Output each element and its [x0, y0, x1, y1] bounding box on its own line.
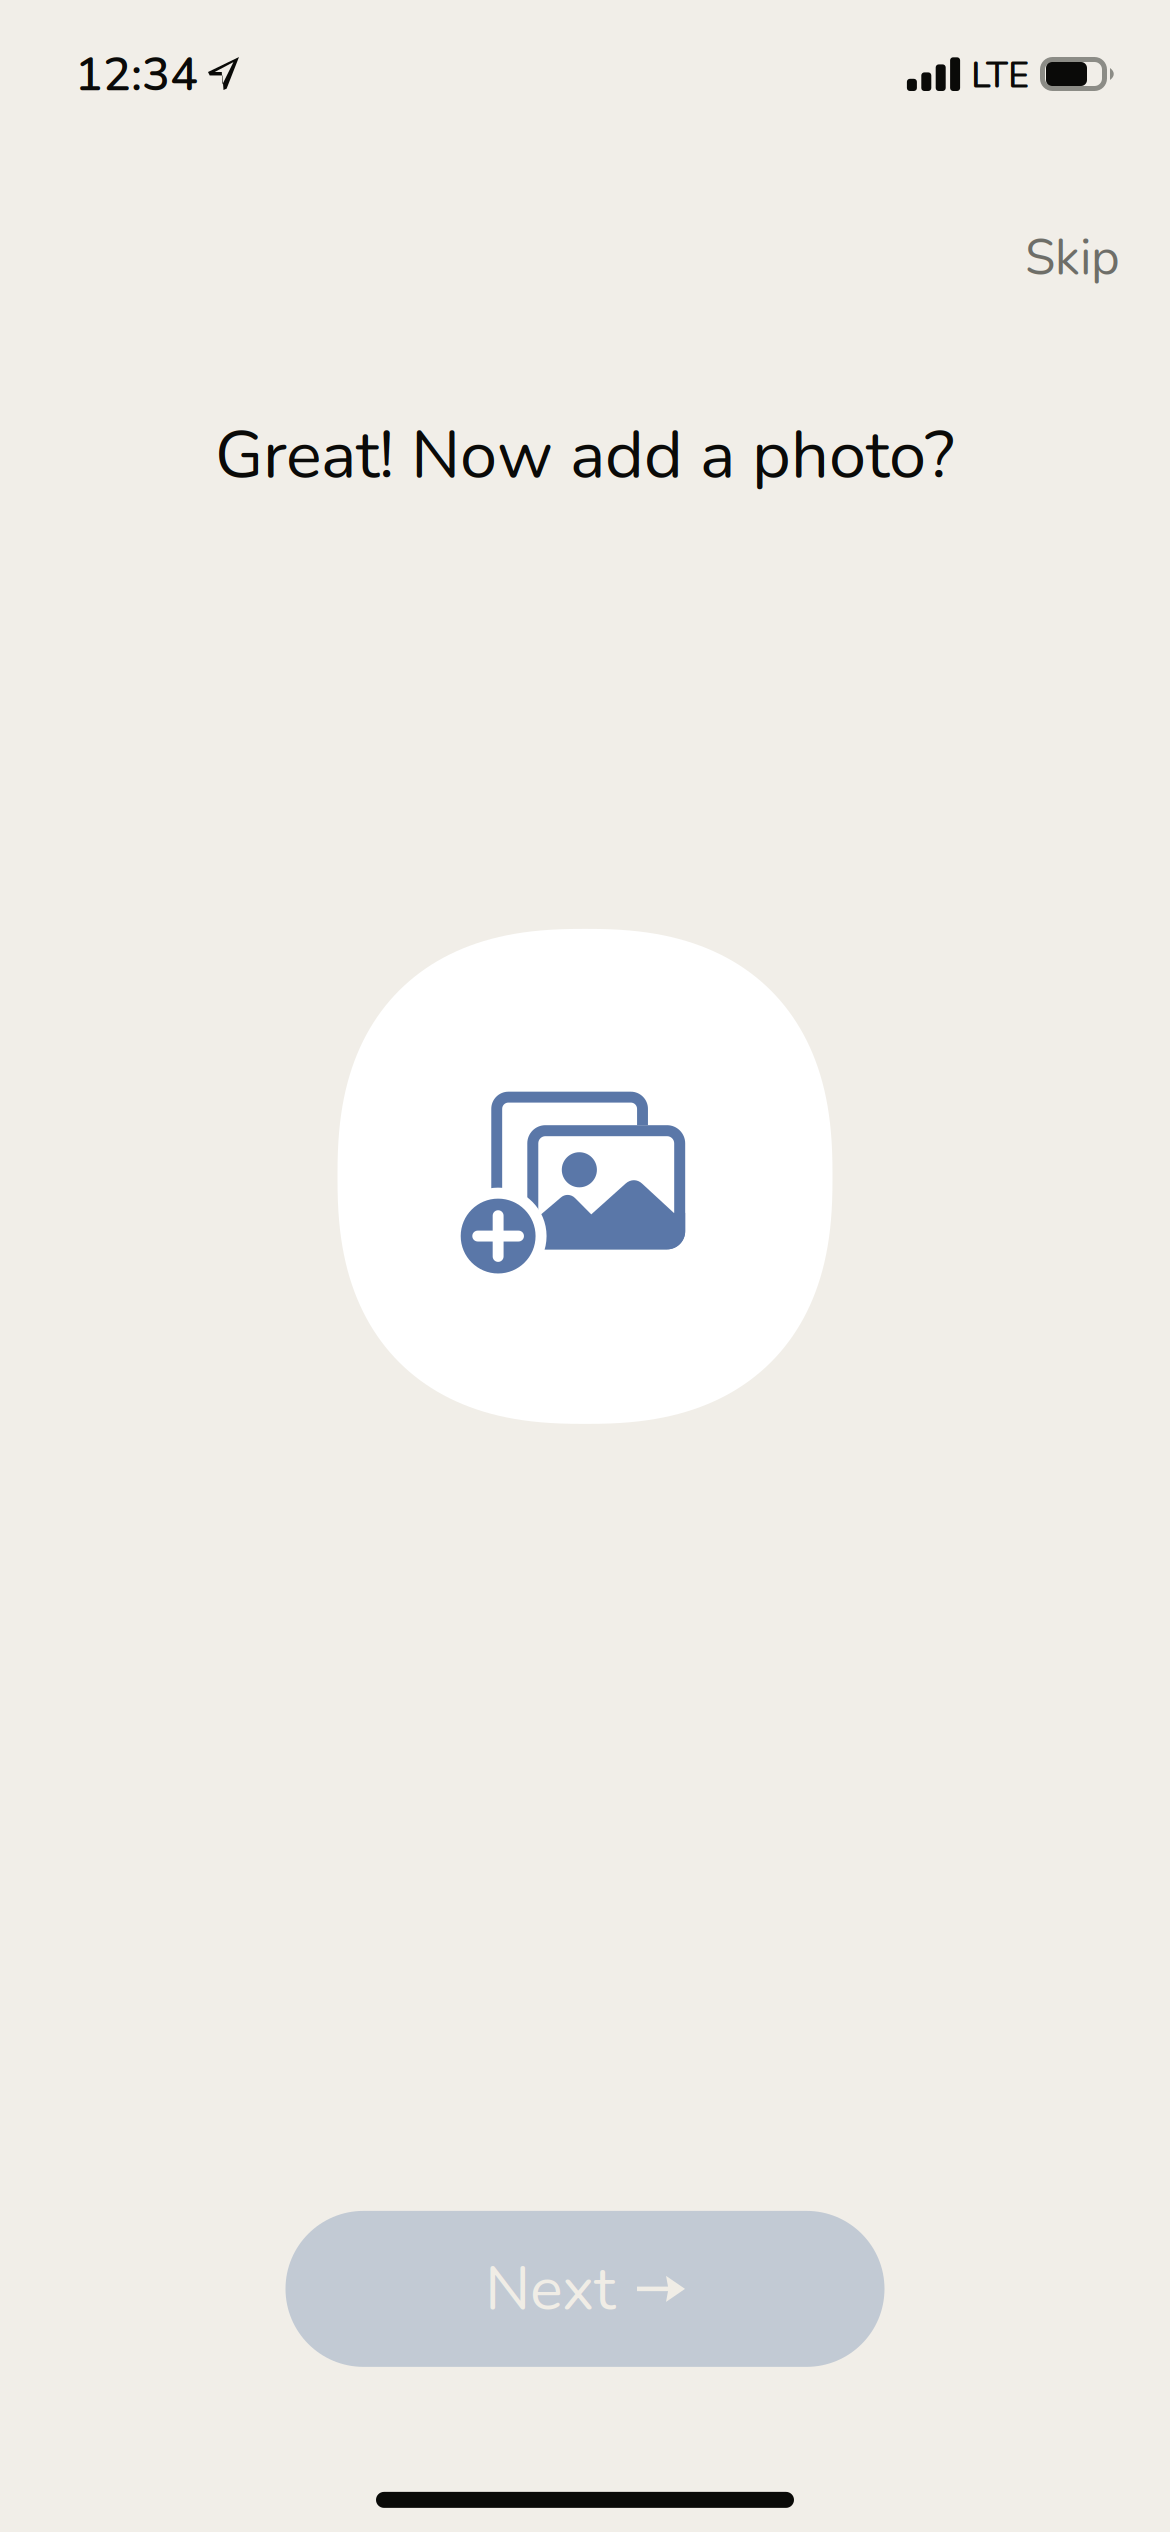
staticText: Next [485, 2247, 615, 2331]
button[interactable]: Skip [997, 205, 1148, 312]
staticText: LTE [971, 51, 1029, 100]
button[interactable]: Next [285, 2211, 884, 2367]
staticText: Skip [1025, 225, 1120, 292]
staticText: Great! Now add a photo? [215, 410, 955, 501]
staticText: 12:34 [75, 43, 198, 107]
